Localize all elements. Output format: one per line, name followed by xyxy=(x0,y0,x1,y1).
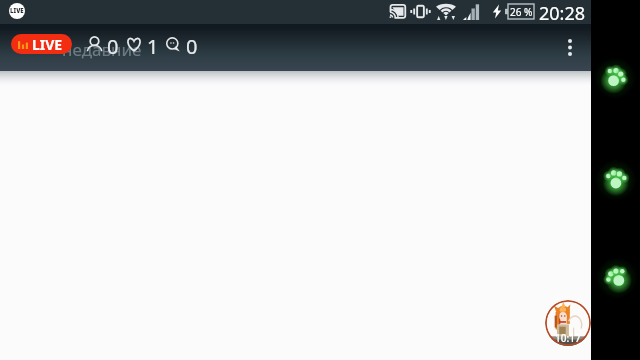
staticText: 0 xyxy=(107,33,119,60)
staticText: LIVE xyxy=(10,7,24,15)
staticText: 20:28 xyxy=(539,1,586,25)
staticText: 1 xyxy=(147,33,159,60)
staticText: 26 % xyxy=(510,5,533,19)
staticText: 0 xyxy=(186,33,198,60)
button[interactable]: More options xyxy=(558,32,582,62)
staticText: недавние xyxy=(62,38,142,61)
button[interactable]: Live stream thumbnail xyxy=(545,300,591,346)
button[interactable]: LIVE xyxy=(11,34,72,54)
staticText: 10:17 xyxy=(555,331,581,345)
staticText: LIVE xyxy=(32,35,63,54)
